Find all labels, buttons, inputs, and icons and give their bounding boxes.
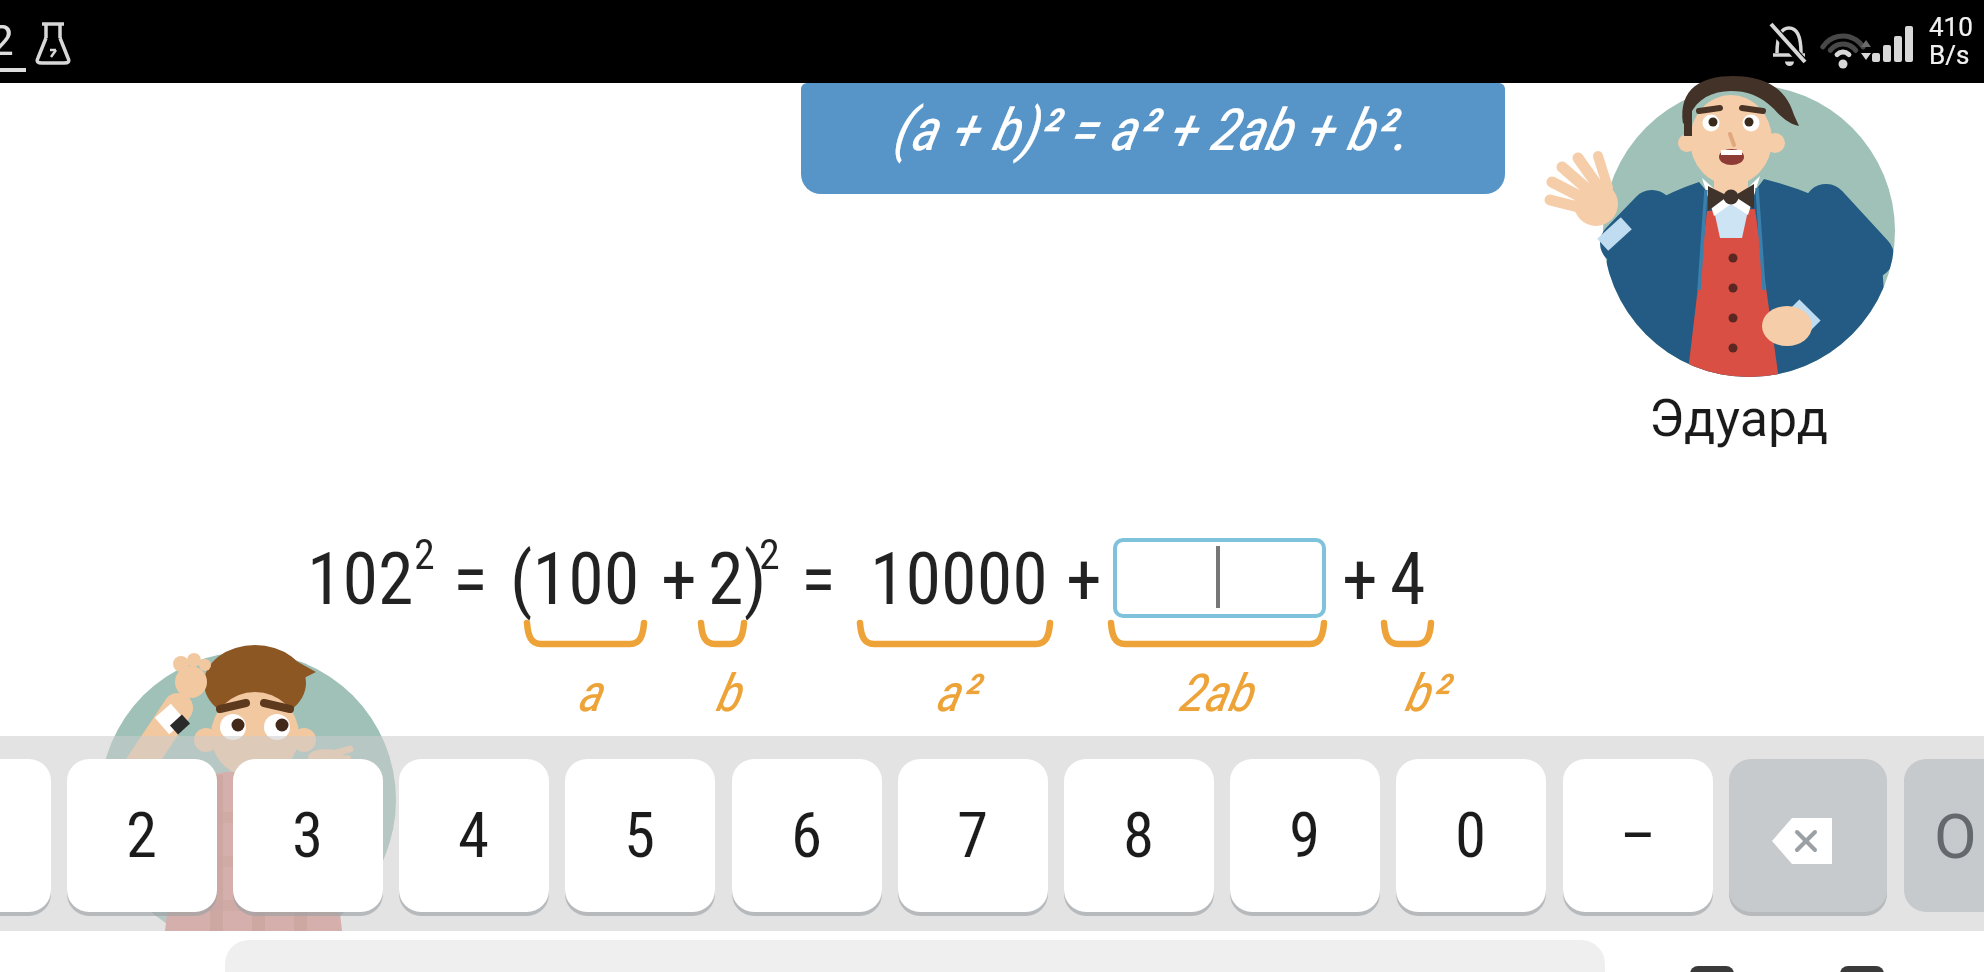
- staticText: О: [1934, 800, 1977, 873]
- button[interactable]: 2: [67, 759, 217, 912]
- button[interactable]: 0: [1396, 759, 1546, 912]
- staticText: B/s: [1929, 40, 1970, 70]
- staticText: =: [801, 537, 836, 621]
- staticText: 9: [1289, 799, 1321, 873]
- button[interactable]: [801, 83, 1505, 194]
- staticText: 4: [1390, 537, 1426, 621]
- button[interactable]: –: [1563, 759, 1713, 912]
- staticText: 2): [708, 537, 767, 621]
- staticText: (100: [510, 537, 640, 621]
- staticText: 3: [292, 799, 324, 873]
- staticText: 2: [0, 16, 14, 65]
- staticText: a: [577, 663, 602, 724]
- staticText: b: [715, 663, 740, 724]
- staticText: 410: [1929, 12, 1973, 42]
- staticText: 8: [1123, 799, 1155, 873]
- staticText: 0: [1455, 799, 1487, 873]
- staticText: +: [1342, 537, 1378, 621]
- button[interactable]: 7: [898, 759, 1048, 912]
- staticText: +: [661, 537, 697, 621]
- staticText: (a + b)² = a² + 2ab + b².: [892, 96, 1408, 164]
- staticText: 2: [414, 530, 435, 579]
- button[interactable]: [1113, 538, 1326, 618]
- button[interactable]: [1729, 759, 1887, 912]
- staticText: b²: [1404, 663, 1446, 724]
- staticText: 102: [307, 537, 414, 621]
- button[interactable]: 8: [1064, 759, 1214, 912]
- staticText: –: [1620, 799, 1657, 873]
- button[interactable]: 4: [399, 759, 549, 912]
- staticText: a²: [935, 663, 977, 724]
- staticText: 10000: [870, 537, 1048, 621]
- button[interactable]: 1: [0, 759, 51, 912]
- button[interactable]: 9: [1230, 759, 1380, 912]
- button[interactable]: 3: [233, 759, 383, 912]
- button[interactable]: 6: [732, 759, 882, 912]
- button[interactable]: 5: [565, 759, 715, 912]
- button[interactable]: [1904, 759, 1984, 912]
- staticText: 2ab: [1178, 663, 1252, 724]
- staticText: 5: [624, 799, 656, 873]
- staticText: 2: [759, 530, 780, 579]
- staticText: 7: [957, 799, 989, 873]
- staticText: 6: [791, 799, 823, 873]
- staticText: =: [453, 537, 488, 621]
- staticText: 4: [458, 799, 490, 873]
- staticText: Эдуард: [1649, 388, 1829, 449]
- staticText: +: [1066, 537, 1102, 621]
- staticText: 2: [126, 799, 158, 873]
